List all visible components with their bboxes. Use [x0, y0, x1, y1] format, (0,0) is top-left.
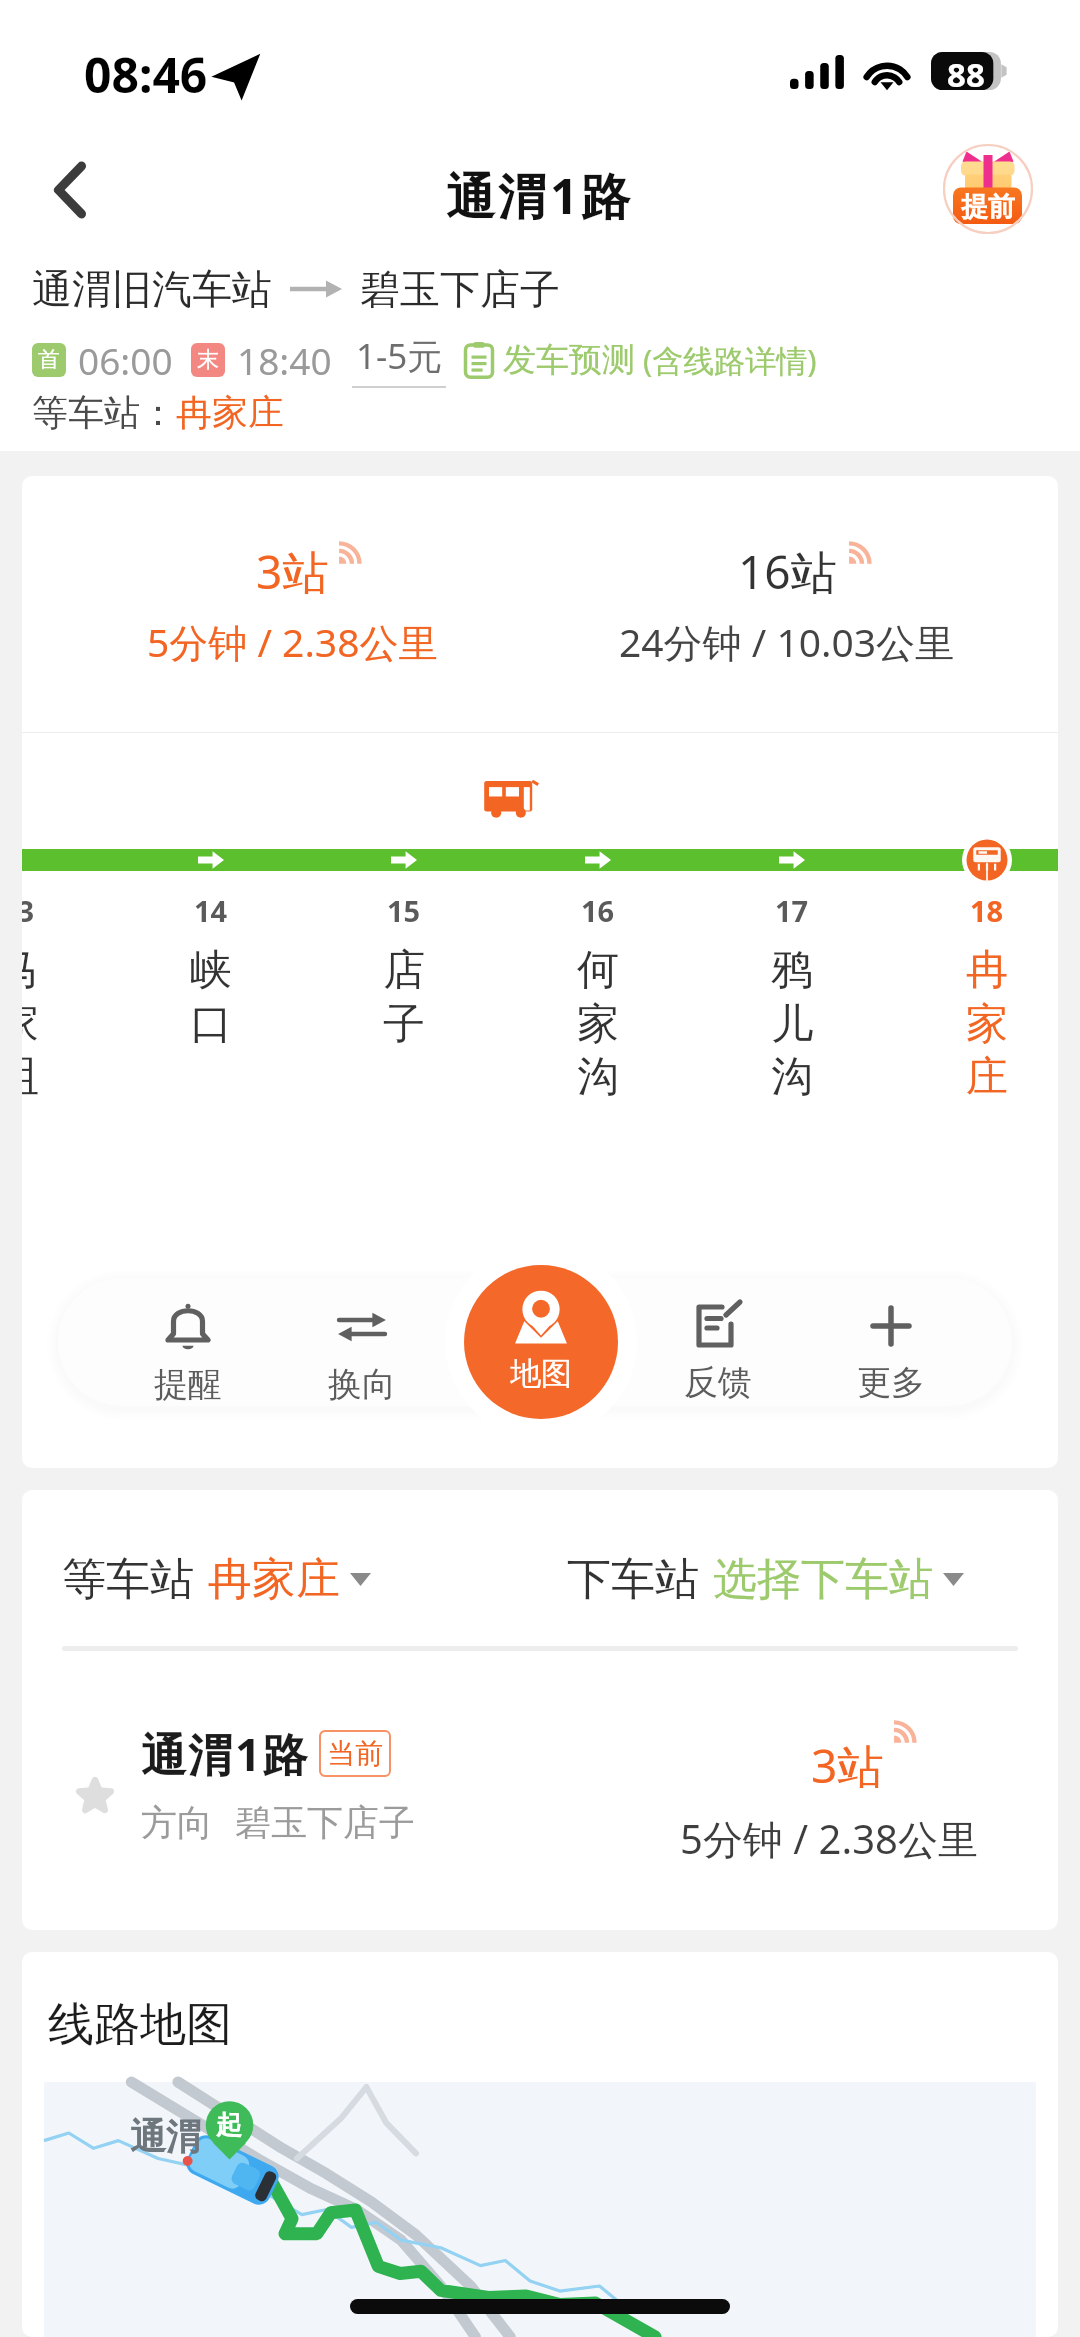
staticText: 冉家庄	[208, 1552, 340, 1607]
button[interactable]: 提醒	[118, 1301, 258, 1406]
staticText: 18	[970, 891, 1004, 930]
staticText: 14	[194, 891, 228, 930]
staticText: 换向	[328, 1363, 396, 1406]
staticText: 1-5元	[356, 332, 443, 380]
staticText: 通渭1路	[446, 162, 634, 229]
staticText: 末	[197, 346, 219, 374]
staticText: 线路地图	[48, 1996, 232, 2054]
staticText: 反馈	[684, 1361, 752, 1404]
staticText: 3站	[256, 540, 329, 603]
button[interactable]: Favourite	[22, 1690, 1058, 1870]
staticText: 起	[216, 2109, 242, 2142]
staticText: 地图	[510, 1354, 572, 1393]
button[interactable]: 反馈	[648, 1301, 788, 1404]
staticText: 冉 家 庄	[966, 944, 1008, 1103]
staticText: 3站	[811, 1734, 884, 1797]
staticText: 18:40	[237, 335, 332, 385]
staticText: 峡 口	[190, 944, 232, 1050]
staticText: 等车站：	[32, 390, 176, 435]
button[interactable]: Route map	[44, 2082, 1036, 2337]
staticText: 24分钟 / 10.03公里	[619, 615, 955, 668]
staticText: 13	[22, 891, 35, 930]
staticText: 更多	[857, 1361, 925, 1404]
staticText: 提前	[961, 190, 1015, 224]
staticText: 17	[775, 891, 809, 930]
staticText: 5分钟 / 2.38公里	[147, 615, 438, 668]
staticText: 碧玉下店子	[235, 1800, 415, 1845]
button[interactable]: Favourite	[59, 1758, 131, 1830]
staticText: 首	[38, 346, 60, 374]
button[interactable]: 下车站	[567, 1548, 964, 1610]
staticText: 下车站	[567, 1552, 699, 1607]
staticText: 店 子	[383, 944, 425, 1050]
button[interactable]: 等车站	[62, 1548, 371, 1610]
staticText: 等车站	[62, 1552, 194, 1607]
staticText: 5分钟 / 2.38公里	[680, 1811, 978, 1866]
staticText: 06:00	[78, 335, 173, 385]
staticText: 选择下车站	[713, 1552, 933, 1607]
staticText: 冉家庄	[176, 390, 284, 435]
staticText: 16	[581, 891, 615, 930]
button[interactable]: 更多	[821, 1301, 961, 1404]
staticText: 发车预测	[503, 339, 635, 381]
staticText: 88	[947, 52, 985, 90]
staticText: 通渭1路	[141, 1723, 310, 1784]
staticText: 鸦 儿 沟	[771, 944, 813, 1103]
button[interactable]: 发车预测	[464, 339, 817, 381]
button[interactable]: Gift promotion	[940, 141, 1036, 237]
staticText: 当前	[327, 1736, 383, 1771]
staticText: 提醒	[154, 1363, 222, 1406]
staticText: 方向	[141, 1800, 213, 1845]
button[interactable]: 换向	[292, 1301, 432, 1406]
button[interactable]: Back	[30, 150, 110, 230]
staticText: 通渭	[130, 2114, 202, 2159]
button[interactable]: 16站	[557, 476, 1017, 732]
staticText: 马 家 咀	[22, 944, 39, 1103]
staticText: 碧玉下店子	[360, 264, 560, 314]
button[interactable]: 地图	[464, 1265, 618, 1419]
staticText: 15	[387, 891, 421, 930]
staticText: 08:46	[84, 42, 208, 107]
button[interactable]: 3站	[62, 476, 522, 732]
staticText: 通渭旧汽车站	[32, 264, 272, 314]
staticText: (含线路详情)	[635, 339, 817, 381]
staticText: 何 家 沟	[577, 944, 619, 1103]
staticText: 16站	[738, 540, 837, 603]
